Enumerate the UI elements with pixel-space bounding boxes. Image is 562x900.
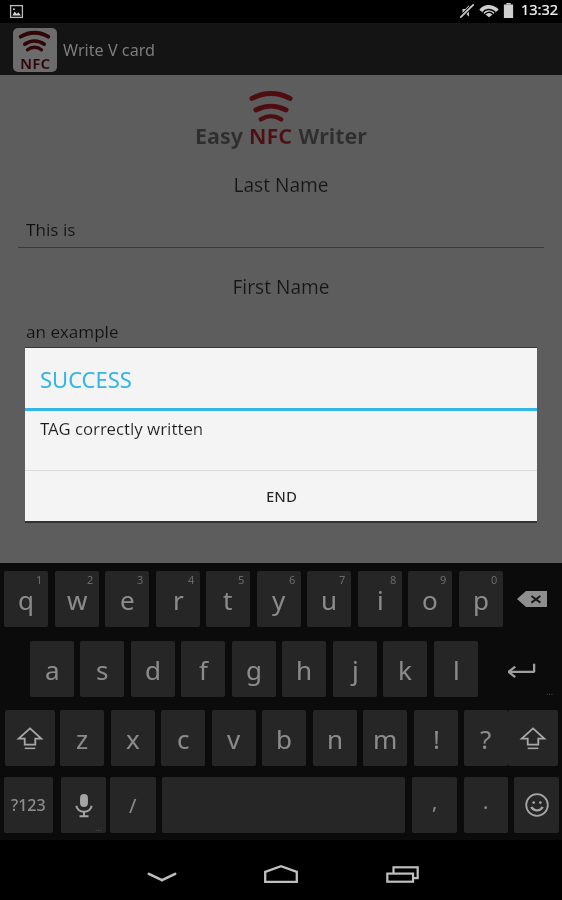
staticText: j (352, 652, 359, 687)
button[interactable]: j (333, 641, 377, 697)
button[interactable]: d (131, 641, 175, 697)
staticText: This is (26, 218, 76, 241)
button[interactable]: r (156, 571, 200, 627)
button[interactable]: Hide keyboard (134, 845, 190, 900)
staticText: 5 (238, 572, 245, 587)
staticText: SUCCESS (40, 364, 132, 394)
staticText: l (453, 652, 460, 687)
staticText: Write V card (63, 39, 156, 61)
staticText: Last Name (0, 172, 562, 198)
button[interactable]: u (307, 571, 351, 627)
staticText: NFC (20, 53, 51, 72)
button[interactable]: Recent apps (373, 845, 429, 900)
staticText: 1 (36, 572, 43, 587)
button[interactable]: o (408, 571, 452, 627)
staticText: ! (433, 721, 440, 756)
staticText: NFC (249, 121, 293, 150)
staticText: g (246, 652, 262, 687)
button[interactable]: q (4, 571, 48, 627)
staticText: 3 (137, 572, 144, 587)
staticText: r (173, 582, 184, 617)
button[interactable]: w (55, 571, 99, 627)
button[interactable]: Shift (5, 710, 55, 766)
staticText: b (276, 721, 292, 756)
staticText: / (129, 792, 137, 819)
staticText: First Name (0, 274, 562, 300)
button[interactable]: l (434, 641, 478, 697)
staticText: an example (26, 320, 119, 343)
staticText: q (18, 582, 34, 617)
button[interactable]: ? (464, 710, 508, 766)
staticText: 2 (87, 572, 94, 587)
button[interactable]: e (105, 571, 149, 627)
button[interactable]: Shift (508, 710, 558, 766)
staticText: 7 (339, 572, 346, 587)
staticText: s (96, 652, 109, 687)
staticText: 8 (390, 572, 397, 587)
button[interactable]: h (282, 641, 326, 697)
staticText: o (422, 582, 438, 617)
staticText: k (398, 652, 412, 687)
button[interactable]: f (181, 641, 225, 697)
staticText: n (327, 721, 344, 756)
staticText: d (145, 652, 161, 687)
staticText: u (321, 582, 338, 617)
staticText: f (199, 652, 208, 687)
staticText: w (67, 582, 88, 617)
staticText: Writer (293, 121, 367, 150)
button[interactable]: Easy NFC Writer app icon (13, 28, 57, 72)
staticText: t (223, 582, 233, 617)
button[interactable]: g (232, 641, 276, 697)
button[interactable]: s (80, 641, 124, 697)
button[interactable]: n (313, 710, 357, 766)
staticText: 9 (440, 572, 447, 587)
staticText: , (432, 788, 438, 815)
button[interactable]: / (110, 777, 156, 833)
button[interactable]: k (383, 641, 427, 697)
staticText: v (227, 721, 241, 756)
button[interactable]: v (212, 710, 256, 766)
button[interactable]: i (358, 571, 402, 627)
staticText: 13:32 (521, 0, 559, 19)
button[interactable]: ?123 (4, 777, 53, 833)
button[interactable]: c (161, 710, 205, 766)
staticText: ... (546, 685, 554, 697)
button[interactable]: p (459, 571, 503, 627)
staticText: y (272, 582, 286, 617)
staticText: i (377, 582, 384, 617)
staticText: m (373, 721, 398, 756)
button[interactable]: Emoji (514, 777, 559, 833)
staticText: h (296, 652, 313, 687)
button[interactable]: , (412, 777, 457, 833)
button[interactable]: b (262, 710, 306, 766)
button[interactable]: END (25, 471, 537, 521)
staticText: p (473, 582, 489, 617)
staticText: z (76, 721, 89, 756)
button[interactable]: Home (253, 846, 309, 900)
staticText: 4 (188, 572, 195, 587)
staticText: TAG correctly written (40, 417, 204, 440)
button[interactable]: ! (414, 710, 458, 766)
button[interactable]: Backspace (506, 571, 558, 627)
staticText: x (126, 721, 140, 756)
staticText: e (120, 582, 135, 617)
staticText: END (266, 486, 297, 506)
staticText: 6 (289, 572, 296, 587)
staticText: Easy (195, 121, 249, 150)
button[interactable]: m (363, 710, 407, 766)
button[interactable]: Voice input (61, 777, 106, 833)
staticText: 0 (491, 572, 498, 587)
staticText: ... (95, 821, 103, 833)
staticText: a (45, 652, 60, 687)
button[interactable]: t (206, 571, 250, 627)
button[interactable]: z (60, 710, 104, 766)
button[interactable]: y (257, 571, 301, 627)
staticText: ?123 (11, 794, 46, 816)
staticText: ? (480, 721, 492, 756)
staticText: . (483, 788, 489, 815)
button[interactable]: . (464, 777, 508, 833)
button[interactable]: x (111, 710, 155, 766)
button[interactable]: Enter (483, 641, 558, 697)
button[interactable]: a (30, 641, 74, 697)
